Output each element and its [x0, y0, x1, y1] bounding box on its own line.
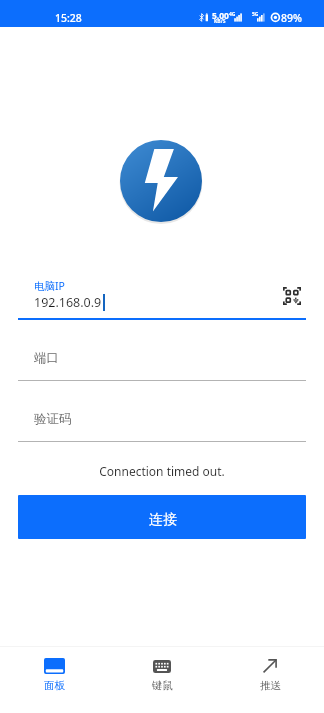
staticText: KB/S [214, 18, 226, 25]
button[interactable]: 连接 [18, 495, 306, 539]
staticText: 5G [252, 11, 259, 18]
staticText: 15:28 [55, 11, 82, 25]
staticText: 连接 [149, 511, 177, 529]
staticText: 89% [281, 11, 302, 25]
button[interactable]: Scan QR code [278, 281, 306, 311]
button[interactable]: 键鼠 [108, 658, 216, 692]
button[interactable]: 推送 [216, 658, 324, 692]
staticText: 端口 [34, 350, 59, 366]
button[interactable]: 面板 [0, 658, 108, 692]
staticText: 4G [229, 11, 236, 18]
staticText: Connection timed out. [0, 463, 324, 479]
staticText: 电脑IP [34, 279, 65, 293]
staticText: 面板 [44, 679, 65, 692]
staticText: 键鼠 [152, 679, 173, 692]
staticText: 5.00 [212, 10, 229, 22]
staticText: 验证码 [34, 411, 72, 427]
staticText: 192.168.0.9 [34, 294, 102, 311]
staticText: 推送 [260, 679, 281, 692]
